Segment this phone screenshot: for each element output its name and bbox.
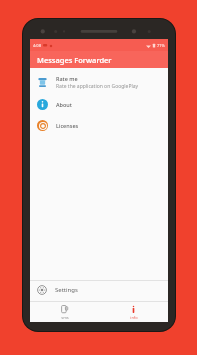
staticText: Rate me [56,75,78,82]
staticText: Messages Forwarder [37,55,112,65]
button[interactable]: Settings [30,281,168,299]
button[interactable]: About [30,97,168,112]
staticText: Licenses [56,122,79,129]
staticText: 71% [157,43,165,48]
staticText: sms [61,315,69,320]
button[interactable]: Licenses [30,118,168,133]
button[interactable]: Info tab [99,302,168,322]
button[interactable]: Rate me [30,72,168,93]
staticText: info [130,315,138,320]
button[interactable]: sms [30,302,99,322]
staticText: Rate the application on GooglePlay [56,83,139,90]
staticText: Settings [55,286,78,294]
staticText: 4:08 [33,43,41,48]
staticText: About [56,101,72,108]
